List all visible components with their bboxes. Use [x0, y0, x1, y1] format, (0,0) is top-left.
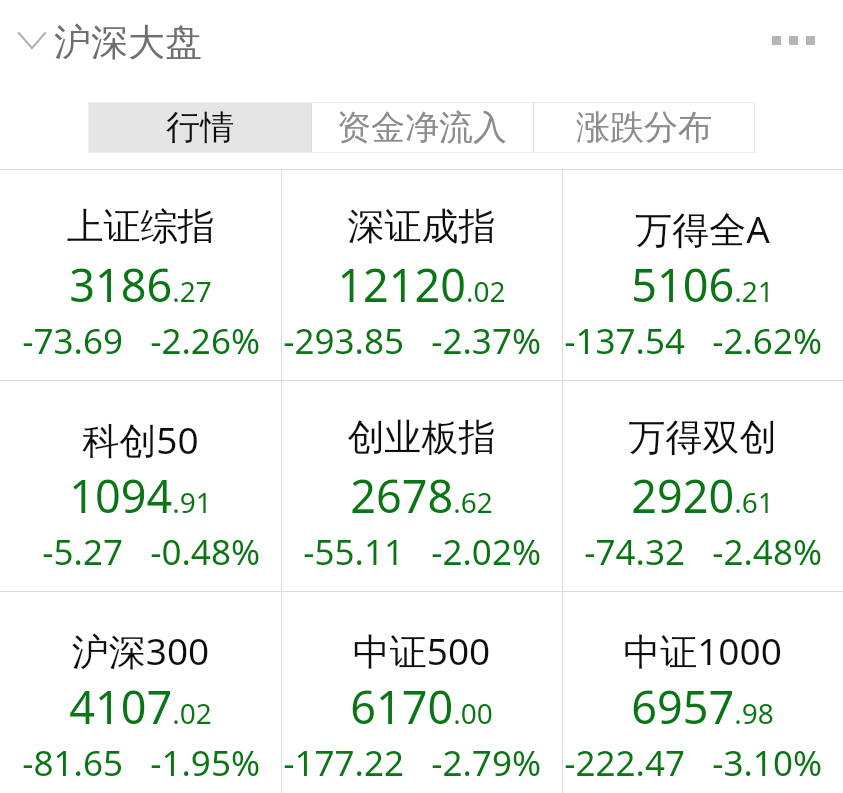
staticText: 涨跌分布	[576, 106, 712, 149]
button[interactable]: Expand	[12, 20, 52, 60]
button[interactable]: More options	[762, 20, 824, 60]
staticText: 1094.91	[0, 465, 281, 526]
staticText: -177.22	[281, 739, 404, 787]
staticText: -74.32	[562, 528, 685, 576]
button[interactable]: 深证成指	[281, 170, 562, 380]
button[interactable]: 涨跌分布	[533, 102, 755, 153]
staticText: -2.79%	[421, 739, 541, 787]
staticText: -2.26%	[140, 317, 260, 365]
staticText: 12120.02	[281, 254, 562, 315]
staticText: 创业板指	[281, 414, 562, 461]
staticText: 3186.27	[0, 254, 281, 315]
staticText: -2.48%	[702, 528, 822, 576]
staticText: 沪深大盘	[54, 19, 202, 66]
staticText: 科创50	[0, 414, 281, 465]
staticText: 6957.98	[562, 676, 843, 737]
staticText: -0.48%	[140, 528, 260, 576]
staticText: -55.11	[281, 528, 404, 576]
button[interactable]: 资金净流入	[311, 102, 533, 153]
staticText: 6170.00	[281, 676, 562, 737]
staticText: 万得全A	[562, 203, 843, 254]
staticText: -2.02%	[421, 528, 541, 576]
staticText: -81.65	[0, 739, 123, 787]
staticText: 万得双创	[562, 414, 843, 461]
button[interactable]: 中证1000	[562, 592, 843, 793]
button[interactable]: 科创50	[0, 381, 281, 591]
staticText: 沪深300	[0, 625, 281, 676]
staticText: -137.54	[562, 317, 685, 365]
staticText: 资金净流入	[337, 106, 507, 149]
staticText: -2.37%	[421, 317, 541, 365]
staticText: 行情	[166, 106, 234, 149]
staticText: 上证综指	[0, 203, 281, 250]
staticText: 2678.62	[281, 465, 562, 526]
button[interactable]: 万得双创	[562, 381, 843, 591]
button[interactable]: 上证综指	[0, 170, 281, 380]
staticText: 深证成指	[281, 203, 562, 250]
staticText: -5.27	[0, 528, 123, 576]
staticText: -3.10%	[702, 739, 822, 787]
staticText: 中证1000	[562, 625, 843, 676]
staticText: 4107.02	[0, 676, 281, 737]
staticText: -1.95%	[140, 739, 260, 787]
staticText: 2920.61	[562, 465, 843, 526]
button[interactable]: 中证500	[281, 592, 562, 793]
staticText: -222.47	[562, 739, 685, 787]
button[interactable]: 万得全A	[562, 170, 843, 380]
staticText: -293.85	[281, 317, 404, 365]
staticText: -73.69	[0, 317, 123, 365]
staticText: -2.62%	[702, 317, 822, 365]
button[interactable]: 行情	[88, 102, 311, 153]
staticText: 中证500	[281, 625, 562, 676]
button[interactable]: 沪深300	[0, 592, 281, 793]
button[interactable]: 创业板指	[281, 381, 562, 591]
staticText: 5106.21	[562, 254, 843, 315]
